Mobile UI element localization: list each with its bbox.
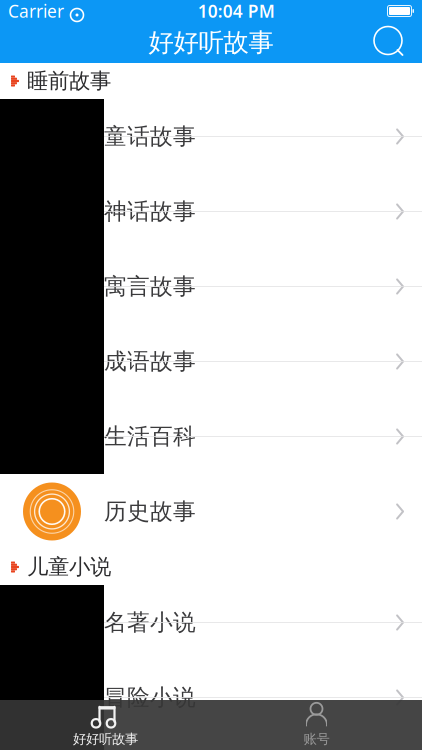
staticText: 冒险小说 xyxy=(104,684,196,711)
button[interactable]: 好好听故事 xyxy=(0,700,211,750)
button[interactable]: 账号 xyxy=(211,700,422,750)
button[interactable]: 探案小说 xyxy=(0,735,422,750)
staticText: 生活百科 xyxy=(104,423,196,450)
staticText: 睡前故事 xyxy=(27,68,111,94)
staticText: 历史故事 xyxy=(104,498,196,525)
staticText: 童话故事 xyxy=(104,123,196,150)
button[interactable]: 名著小说 xyxy=(0,585,422,660)
button[interactable]: 历史故事 xyxy=(0,474,422,549)
button[interactable]: 成语故事 xyxy=(0,324,422,399)
staticText: 神话故事 xyxy=(104,198,196,225)
staticText: 10:04 PM xyxy=(198,0,275,22)
staticText: 名著小说 xyxy=(104,609,196,636)
staticText: 寓言故事 xyxy=(104,273,196,300)
button[interactable]: 神话故事 xyxy=(0,174,422,249)
staticText: 儿童小说 xyxy=(27,554,111,580)
staticText: 好好听故事 xyxy=(148,27,273,58)
button[interactable]: Search xyxy=(368,22,412,63)
button[interactable]: 生活百科 xyxy=(0,399,422,474)
button[interactable]: 冒险小说 xyxy=(0,660,422,735)
staticText: Carrier xyxy=(8,0,64,22)
button[interactable]: 寓言故事 xyxy=(0,249,422,324)
staticText: 账号 xyxy=(303,731,329,747)
staticText: 好好听故事 xyxy=(73,731,138,747)
staticText: 成语故事 xyxy=(104,348,196,375)
button[interactable]: 童话故事 xyxy=(0,99,422,174)
